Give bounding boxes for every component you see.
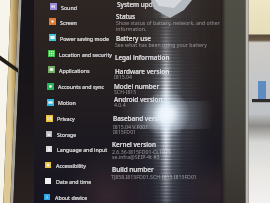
button[interactable]: Accessibility <box>36 157 111 173</box>
staticText: I815.04 <box>114 73 132 80</box>
staticText: Screen <box>60 19 77 26</box>
button[interactable]: Baseband version <box>113 114 168 123</box>
staticText: Storage <box>57 131 77 138</box>
staticText: Motion <box>58 99 76 106</box>
button[interactable]: Location and security <box>39 46 111 62</box>
staticText: Location and security <box>59 51 113 58</box>
staticText: SCH-I815 <box>114 88 137 95</box>
button[interactable]: Motion <box>38 94 111 110</box>
button[interactable]: Applications <box>39 62 111 78</box>
button[interactable]: Kernel version <box>112 140 156 149</box>
button[interactable]: Sound <box>41 0 111 15</box>
staticText: Applications <box>59 67 90 74</box>
staticText: See what has been using your battery <box>115 41 207 48</box>
button[interactable]: Privacy <box>37 110 111 126</box>
staticText: Sound <box>61 4 77 11</box>
button[interactable]: System updates <box>117 0 166 9</box>
button[interactable]: Hardware version <box>115 67 170 76</box>
button[interactable]: Model number <box>114 82 160 91</box>
button[interactable]: About device <box>35 189 111 203</box>
staticText: About device <box>55 194 88 201</box>
staticText: 4.0.4 <box>114 101 126 108</box>
staticText: 2.6.36-I815FD01-CL1075 <box>112 148 171 155</box>
button[interactable]: Battery use <box>116 34 151 43</box>
staticText: I815FD01 <box>113 128 137 135</box>
button[interactable]: Status <box>116 12 136 21</box>
button[interactable]: Storage <box>37 126 111 142</box>
staticText: TJ858.I815FD01.SCH-I815.I815FD01 <box>111 173 197 180</box>
staticText: Accessibility <box>56 162 86 169</box>
button[interactable]: Accounts and sync <box>38 78 111 94</box>
button[interactable]: Power saving mode <box>40 30 111 46</box>
button[interactable]: Language and input <box>37 141 111 157</box>
button[interactable]: Build number <box>112 165 154 174</box>
staticText: Date and time <box>56 178 92 185</box>
button[interactable]: Legal information <box>115 53 170 62</box>
staticText: Accounts and sync <box>58 83 104 90</box>
staticText: I815.04 V.F001 <box>113 123 149 130</box>
button[interactable]: Android version <box>114 95 163 104</box>
staticText: Language and input <box>57 146 108 153</box>
button[interactable]: Screen <box>40 14 111 30</box>
staticText: se.infra@SEIP-4t #3 <box>112 153 160 160</box>
staticText: Privacy <box>57 115 75 122</box>
staticText: Show status of battery, network, and oth… <box>116 19 220 26</box>
staticText: Power saving mode <box>60 35 109 42</box>
button[interactable]: Date and time <box>36 173 111 189</box>
staticText: information. <box>116 25 147 32</box>
